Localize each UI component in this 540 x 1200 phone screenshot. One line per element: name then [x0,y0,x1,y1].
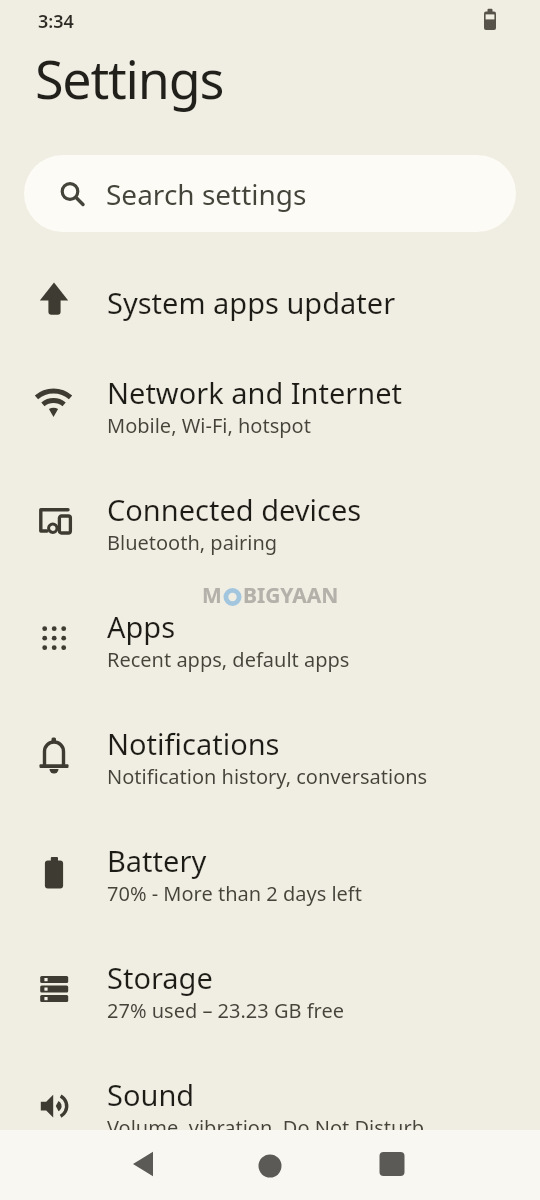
button[interactable]: Network and Internet [0,349,540,466]
staticText: Search settings [106,175,307,213]
staticText: Recent apps, default apps [107,646,350,673]
staticText: 3:34 [38,9,74,34]
staticText: System apps updater [107,283,396,322]
staticText: Bluetooth, pairing [107,529,278,556]
staticText: Apps [107,607,176,646]
button[interactable]: Storage [0,934,540,1051]
staticText: Sound [107,1075,195,1114]
staticText: Network and Internet [107,373,403,412]
button[interactable]: System apps updater [0,255,540,349]
staticText: 70% - More than 2 days left [107,880,362,907]
staticText: Mobile, Wi-Fi, hotspot [107,412,311,439]
button[interactable]: Sound [0,1051,540,1168]
staticText: Volume, vibration, Do Not Disturb [107,1114,424,1141]
staticText: Notification history, conversations [107,763,428,790]
staticText: Storage [107,958,213,997]
button[interactable]: Notifications [0,700,540,817]
button[interactable] [255,1151,285,1181]
button[interactable]: Apps [0,583,540,700]
staticText: Battery [107,841,207,880]
staticText: Connected devices [107,490,362,529]
button[interactable]: Search settings [24,155,516,232]
button[interactable]: Battery [0,817,540,934]
staticText: Settings [35,43,224,114]
button[interactable]: Connected devices [0,466,540,583]
staticText: BIGYAAN [243,581,339,610]
button[interactable] [129,1149,159,1179]
staticText: Notifications [107,724,280,763]
staticText: M [202,581,222,610]
button[interactable] [377,1149,407,1179]
staticText: 27% used – 23.23 GB free [107,997,344,1024]
